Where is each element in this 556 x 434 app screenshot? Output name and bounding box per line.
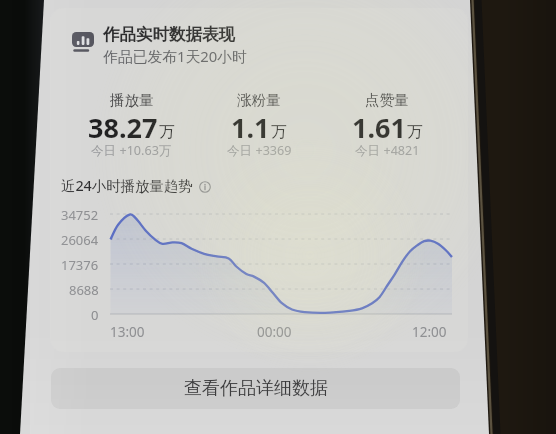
staticText: 13:00 <box>110 323 145 339</box>
staticText: 播放量 <box>110 91 154 109</box>
button[interactable]: 作品实时数据表现 <box>50 8 468 352</box>
staticText: 涨粉量 <box>237 91 281 109</box>
staticText: 34752 <box>61 206 99 224</box>
button[interactable]: 查看作品详细数据 <box>51 368 460 409</box>
staticText: 00:00 <box>257 323 292 339</box>
staticText: 1.61 <box>352 109 406 146</box>
other: Analytics <box>72 32 94 52</box>
staticText: 万 <box>407 122 423 142</box>
staticText: 近24小时播放量趋势 <box>61 176 193 196</box>
staticText: 38.27 <box>88 109 158 146</box>
staticText: 1.1 <box>231 109 270 146</box>
staticText: 今日 +10.63万 <box>91 142 172 159</box>
staticText: 查看作品详细数据 <box>184 377 328 400</box>
staticText: 万 <box>271 122 287 142</box>
staticText: 26064 <box>61 231 99 249</box>
staticText: 17376 <box>61 256 99 274</box>
staticText: 今日 +4821 <box>355 142 420 159</box>
staticText: 作品实时数据表现 <box>103 24 235 45</box>
staticText: 8688 <box>69 281 99 299</box>
staticText: 点赞量 <box>365 91 409 109</box>
staticText: 作品已发布1天20小时 <box>103 46 247 66</box>
staticText: 12:00 <box>412 323 447 339</box>
staticText: 万 <box>159 122 175 142</box>
staticText: 今日 +3369 <box>227 142 292 159</box>
staticText: 0 <box>91 306 99 324</box>
